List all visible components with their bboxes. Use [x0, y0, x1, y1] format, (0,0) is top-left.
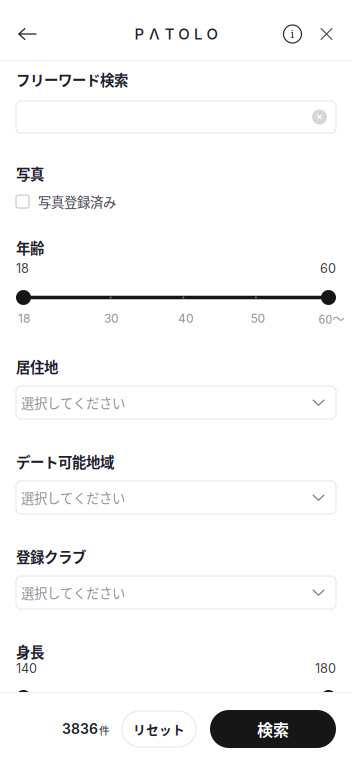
staticText: 選択してください: [21, 583, 125, 602]
button[interactable]: 検索: [210, 710, 336, 748]
staticText: 検索: [257, 717, 289, 741]
staticText: 18: [16, 261, 29, 276]
staticText: フリーワード検索: [16, 69, 128, 90]
button[interactable]: 選択してください: [16, 386, 336, 419]
button[interactable]: リセット: [122, 711, 196, 747]
staticText: PΛTOLO: [134, 25, 217, 43]
staticText: 登録クラブ: [16, 546, 86, 567]
staticText: 60〜: [318, 310, 344, 327]
button[interactable]: [16, 101, 336, 133]
button[interactable]: Information: [276, 11, 309, 57]
staticText: リセット: [133, 720, 185, 738]
staticText: 18: [18, 311, 30, 326]
staticText: 選択してください: [21, 488, 125, 507]
staticText: 3836: [62, 720, 98, 737]
staticText: 居住地: [16, 356, 58, 377]
staticText: 30: [104, 311, 119, 326]
staticText: 写真: [16, 163, 44, 184]
button[interactable]: Close: [309, 11, 344, 57]
staticText: 40: [178, 311, 194, 326]
staticText: 身長: [16, 641, 44, 662]
staticText: デート可能地域: [16, 451, 114, 472]
staticText: 60: [320, 261, 336, 276]
staticText: 件: [99, 722, 110, 737]
button[interactable]: 選択してください: [16, 576, 336, 609]
staticText: 50: [250, 311, 265, 326]
button[interactable]: 選択してください: [16, 481, 336, 514]
staticText: 180: [315, 661, 336, 676]
button[interactable]: 写真登録済み: [16, 194, 336, 209]
button[interactable]: Back: [5, 11, 50, 57]
staticText: 選択してください: [21, 393, 125, 412]
staticText: 写真登録済み: [38, 192, 116, 211]
staticText: 年齢: [16, 237, 44, 258]
staticText: i: [290, 27, 294, 41]
staticText: 140: [16, 661, 37, 676]
